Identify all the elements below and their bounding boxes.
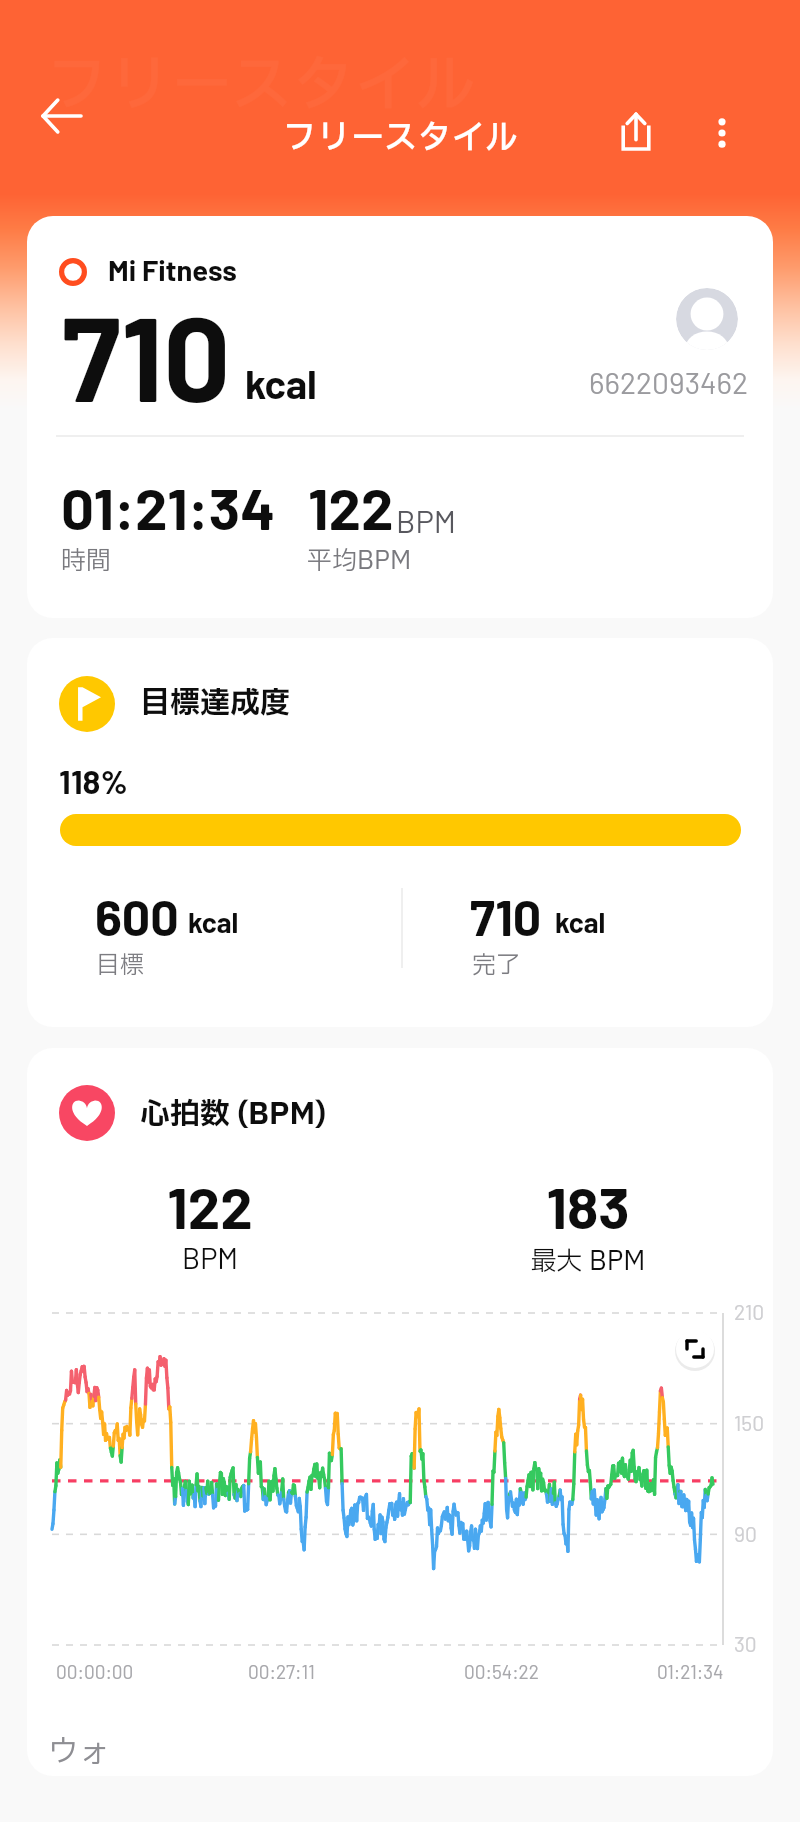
staticText: 6622093462 [589,364,749,400]
staticText: 時間 [61,543,112,580]
staticText: 150 [734,1410,765,1435]
staticText: 710 [470,886,542,946]
button[interactable]: More options [678,89,766,177]
staticText: 118% [59,761,128,801]
staticText: BPM [396,502,456,539]
staticText: 目標 [96,948,144,984]
staticText: kcal [245,359,317,407]
staticText: 90 [734,1521,757,1546]
staticText: 01:21:34 [657,1660,724,1683]
staticText: 122 [308,472,394,542]
staticText: kcal [555,905,606,939]
staticText: 210 [734,1299,765,1324]
staticText: 710 [62,284,231,426]
staticText: 01:21:34 [61,472,276,542]
button[interactable]: Share [592,87,680,175]
staticText: フリースタイル [283,113,519,164]
staticText: 目標達成度 [140,681,290,726]
staticText: ウォ [48,1729,110,1775]
staticText: 00:27:11 [248,1660,315,1683]
staticText: 30 [734,1631,757,1656]
staticText: 最大 BPM [488,1242,688,1281]
staticText: 00:54:22 [464,1660,539,1683]
staticText: 00:00:00 [56,1660,134,1683]
staticText: 600 [95,886,179,946]
staticText: BPM [110,1240,310,1275]
staticText: 122 [110,1171,310,1241]
button[interactable]: Back [18,72,106,160]
staticText: kcal [188,905,239,939]
staticText: 平均BPM [307,543,412,580]
staticText: フリースタイル [47,40,477,133]
staticText: Mi Fitness [108,252,237,287]
staticText: 183 [488,1171,688,1241]
button[interactable]: Expand chart [675,1329,715,1369]
staticText: 完了 [472,948,520,984]
staticText: 心拍数 (BPM) [140,1092,326,1137]
